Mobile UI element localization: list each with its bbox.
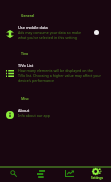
button[interactable]: Toggle use mobile data xyxy=(94,30,99,35)
staticText: Settings xyxy=(91,176,103,180)
staticText: Info about our app xyxy=(18,113,50,118)
staticText: General xyxy=(21,13,35,18)
staticText: Tivo xyxy=(21,51,29,56)
staticText: Misc xyxy=(21,96,29,101)
staticText: Use mobile data xyxy=(18,25,48,30)
staticText: How many elements will be displayed on t… xyxy=(18,68,101,83)
staticText: Ads may consume your data so make what y… xyxy=(18,30,81,40)
button[interactable]: Use mobile data xyxy=(0,25,111,40)
button[interactable]: TiVo List xyxy=(0,63,111,83)
button[interactable]: About xyxy=(0,108,111,119)
button[interactable]: Settings xyxy=(83,168,111,182)
button[interactable]: Library xyxy=(27,168,55,182)
staticText: About xyxy=(18,108,30,113)
staticText: TiVo List xyxy=(18,63,34,68)
button[interactable]: Search xyxy=(0,168,27,182)
button[interactable]: Stats xyxy=(55,168,83,182)
